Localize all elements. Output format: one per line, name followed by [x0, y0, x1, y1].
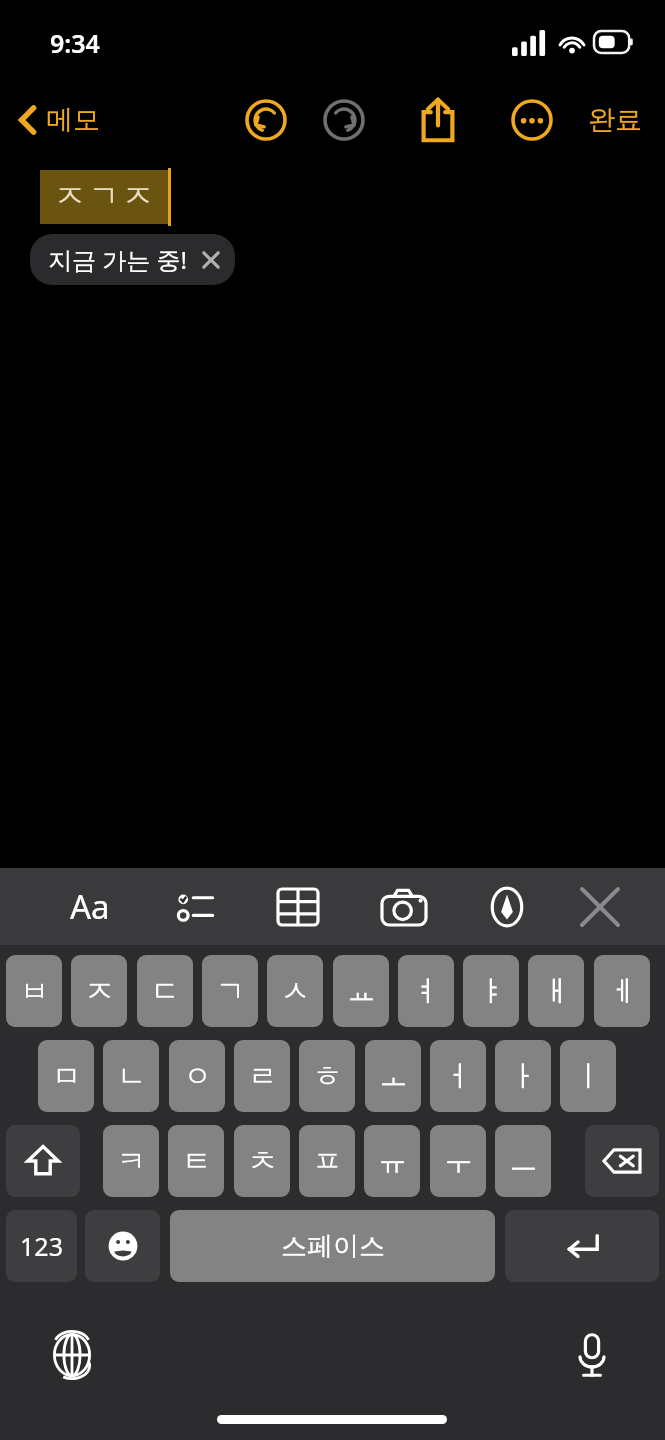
button[interactable]: ㄷ: [137, 955, 193, 1027]
button[interactable]: Checklist: [162, 868, 228, 945]
button[interactable]: ㄱ: [202, 955, 258, 1027]
staticText: ㅌ: [182, 1143, 211, 1180]
staticText: 9:34: [50, 26, 100, 60]
button[interactable]: ㅔ: [594, 955, 650, 1027]
button[interactable]: ㅈ: [71, 955, 127, 1027]
staticText: ㅕ: [412, 973, 441, 1010]
button[interactable]: ㅐ: [528, 955, 584, 1027]
staticText: ㅜ: [444, 1143, 473, 1180]
button[interactable]: 스페이스: [170, 1210, 495, 1282]
button[interactable]: Close keyboard: [567, 868, 633, 945]
staticText: ㅠ: [378, 1143, 407, 1180]
staticText: ㅊ: [248, 1143, 277, 1180]
button[interactable]: ㅡ: [495, 1125, 551, 1197]
staticText: ㅡ: [509, 1143, 538, 1180]
button[interactable]: ㅂ: [6, 955, 62, 1027]
button[interactable]: Change keyboard: [40, 1323, 104, 1387]
button[interactable]: ㅜ: [430, 1125, 486, 1197]
staticText: ㄴ: [117, 1058, 146, 1095]
other: Dismiss suggestion: [201, 250, 221, 270]
button[interactable]: Camera: [371, 868, 437, 945]
staticText: ㅋ: [117, 1143, 146, 1180]
staticText: ㅁ: [52, 1058, 81, 1095]
staticText: ㅓ: [444, 1058, 473, 1095]
button[interactable]: ㅌ: [168, 1125, 224, 1197]
button[interactable]: ㅊ: [234, 1125, 290, 1197]
staticText: ㅅ: [281, 973, 310, 1010]
staticText: ㄷ: [151, 973, 180, 1010]
button[interactable]: ㅅ: [267, 955, 323, 1027]
staticText: ㅔ: [608, 973, 637, 1010]
staticText: ㅏ: [509, 1058, 538, 1095]
button[interactable]: ㅕ: [398, 955, 454, 1027]
button[interactable]: Return: [505, 1210, 659, 1282]
staticText: 완료: [588, 103, 642, 137]
button[interactable]: ㅠ: [364, 1125, 420, 1197]
staticText: ㅈㄱㅈ: [53, 177, 155, 215]
button[interactable]: Dictation: [560, 1323, 624, 1387]
button[interactable]: 메모: [18, 80, 100, 160]
button[interactable]: Shift: [6, 1125, 80, 1197]
button[interactable]: 123: [6, 1210, 77, 1282]
button[interactable]: Redo: [318, 80, 370, 160]
button[interactable]: Share: [412, 80, 464, 160]
staticText: ㅐ: [542, 973, 571, 1010]
button[interactable]: ㅓ: [430, 1040, 486, 1112]
staticText: ㅎ: [313, 1058, 342, 1095]
button[interactable]: Format: [57, 868, 123, 945]
button[interactable]: 완료: [575, 80, 655, 160]
staticText: ㅇ: [183, 1058, 212, 1095]
button[interactable]: ㅎ: [299, 1040, 355, 1112]
button[interactable]: ㅋ: [103, 1125, 159, 1197]
staticText: ㅗ: [379, 1058, 408, 1095]
button[interactable]: ㅣ: [560, 1040, 616, 1112]
button[interactable]: ㅍ: [299, 1125, 355, 1197]
button[interactable]: ㅑ: [463, 955, 519, 1027]
button[interactable]: ㄹ: [234, 1040, 290, 1112]
staticText: ㄱ: [216, 973, 245, 1010]
staticText: ㄹ: [248, 1058, 277, 1095]
staticText: ㅑ: [477, 973, 506, 1010]
button[interactable]: ㅏ: [495, 1040, 551, 1112]
staticText: ㅂ: [20, 973, 49, 1010]
button[interactable]: ㅗ: [365, 1040, 421, 1112]
button[interactable]: Undo: [240, 80, 292, 160]
button[interactable]: More: [506, 80, 558, 160]
staticText: 스페이스: [281, 1230, 385, 1263]
button[interactable]: ㄴ: [103, 1040, 159, 1112]
staticText: Aa: [70, 884, 110, 929]
staticText: ㅈ: [85, 973, 114, 1010]
staticText: ㅣ: [574, 1058, 603, 1095]
button[interactable]: ㅁ: [38, 1040, 94, 1112]
button[interactable]: Markup: [474, 868, 540, 945]
button[interactable]: ㅇ: [169, 1040, 225, 1112]
button[interactable]: Emoji: [85, 1210, 160, 1282]
staticText: ㅍ: [313, 1143, 342, 1180]
button[interactable]: 지금 가는 중!: [30, 234, 235, 285]
staticText: 지금 가는 중!: [48, 243, 187, 276]
staticText: ㅛ: [347, 973, 376, 1010]
button[interactable]: Backspace: [585, 1125, 659, 1197]
button[interactable]: ㅛ: [333, 955, 389, 1027]
staticText: 메모: [46, 103, 100, 137]
button[interactable]: Table: [265, 868, 331, 945]
staticText: 123: [20, 1229, 63, 1263]
